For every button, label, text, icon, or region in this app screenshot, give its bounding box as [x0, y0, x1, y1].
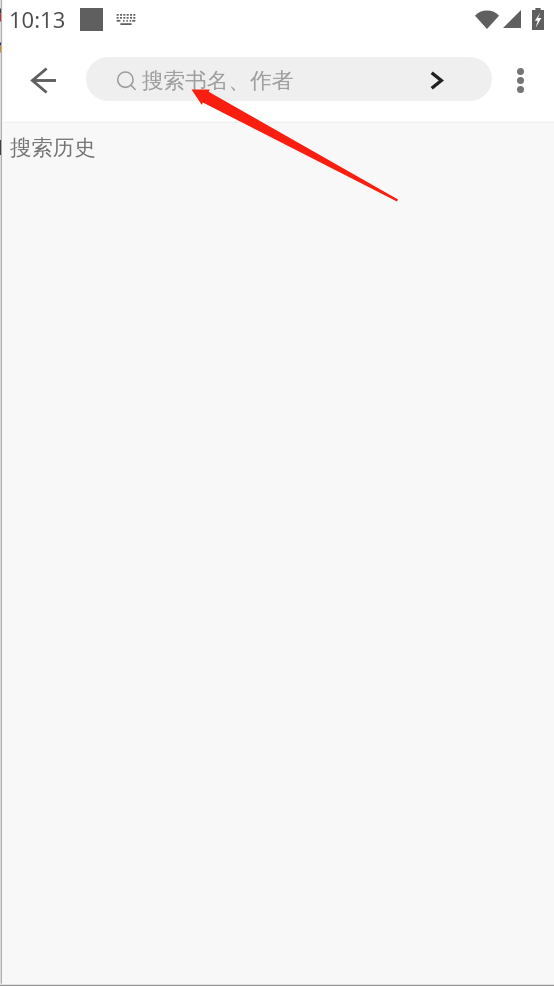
button[interactable]: Search	[414, 58, 458, 101]
staticText: 搜索历史	[10, 134, 96, 161]
button[interactable]: Back	[19, 56, 67, 104]
staticText: 10:13	[9, 4, 66, 34]
button[interactable]: 搜索书名、作者	[86, 57, 492, 101]
button[interactable]: More options	[498, 58, 542, 102]
staticText: 搜索书名、作者	[142, 67, 294, 94]
